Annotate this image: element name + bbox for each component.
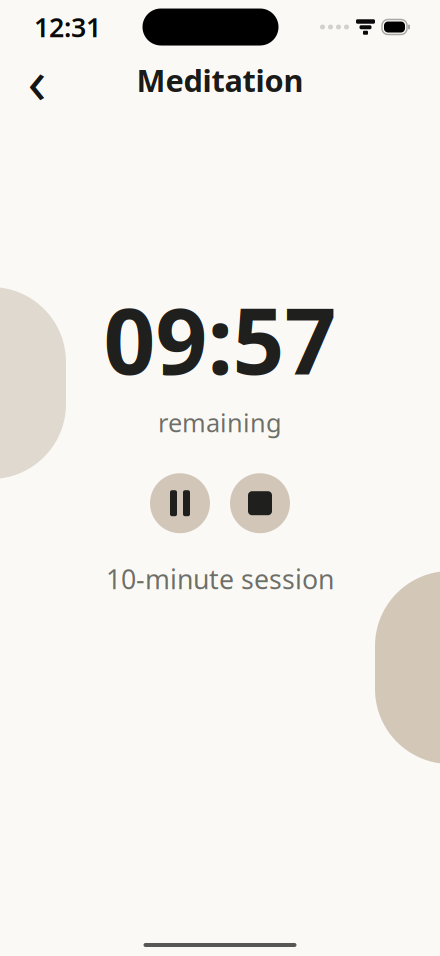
staticText: Meditation [136, 60, 303, 100]
staticText: remaining [158, 406, 282, 439]
staticText: ‹ [27, 39, 46, 121]
button[interactable]: Stop [230, 473, 290, 533]
button[interactable]: Pause [150, 473, 210, 533]
staticText: 10-minute session [106, 561, 334, 597]
staticText: 09:57 [103, 279, 336, 400]
staticText: 12:31 [34, 9, 101, 45]
button[interactable]: Back [15, 58, 59, 102]
